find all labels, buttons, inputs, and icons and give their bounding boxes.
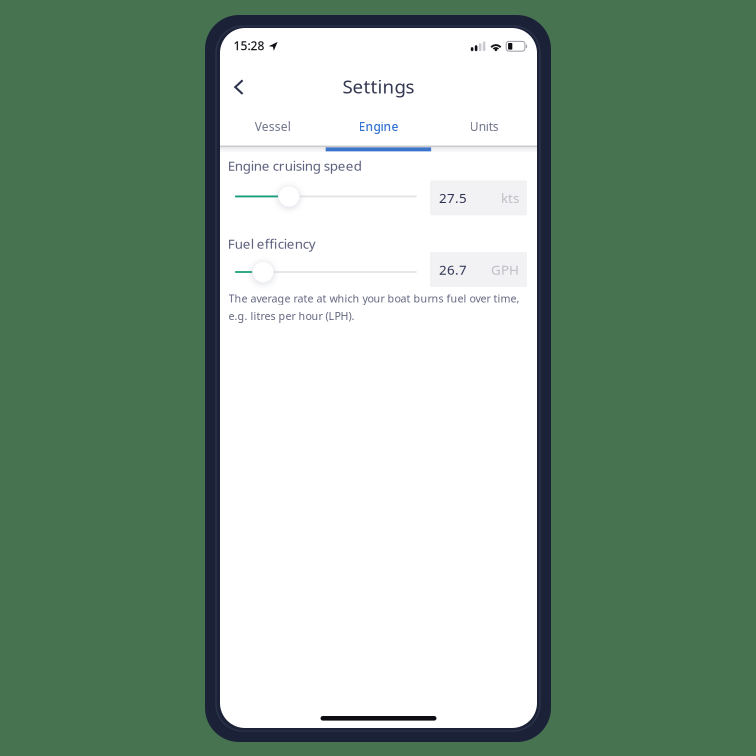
staticText: Units [470, 118, 499, 134]
staticText: Engine [358, 118, 398, 134]
staticText: kts [501, 189, 519, 207]
staticText: Vessel [255, 118, 291, 134]
button[interactable]: Vessel [220, 107, 326, 151]
staticText: Settings [342, 74, 414, 99]
button[interactable]: Back [224, 72, 254, 102]
button[interactable] [235, 185, 417, 207]
staticText: 26.7 [439, 261, 467, 278]
staticText: 27.5 [439, 189, 467, 207]
staticText: Fuel efficiency [228, 235, 316, 252]
button[interactable]: Engine [326, 107, 431, 151]
staticText: Engine cruising speed [228, 157, 362, 174]
staticText: 15:28 [234, 38, 265, 53]
button[interactable] [235, 261, 417, 283]
button[interactable]: 27.5 [430, 180, 527, 215]
button[interactable]: 26.7 [430, 252, 527, 287]
staticText: e.g. litres per hour (LPH). [229, 309, 355, 323]
button[interactable]: Units [431, 107, 537, 151]
staticText: The average rate at which your boat burn… [229, 291, 520, 305]
staticText: GPH [491, 261, 519, 278]
